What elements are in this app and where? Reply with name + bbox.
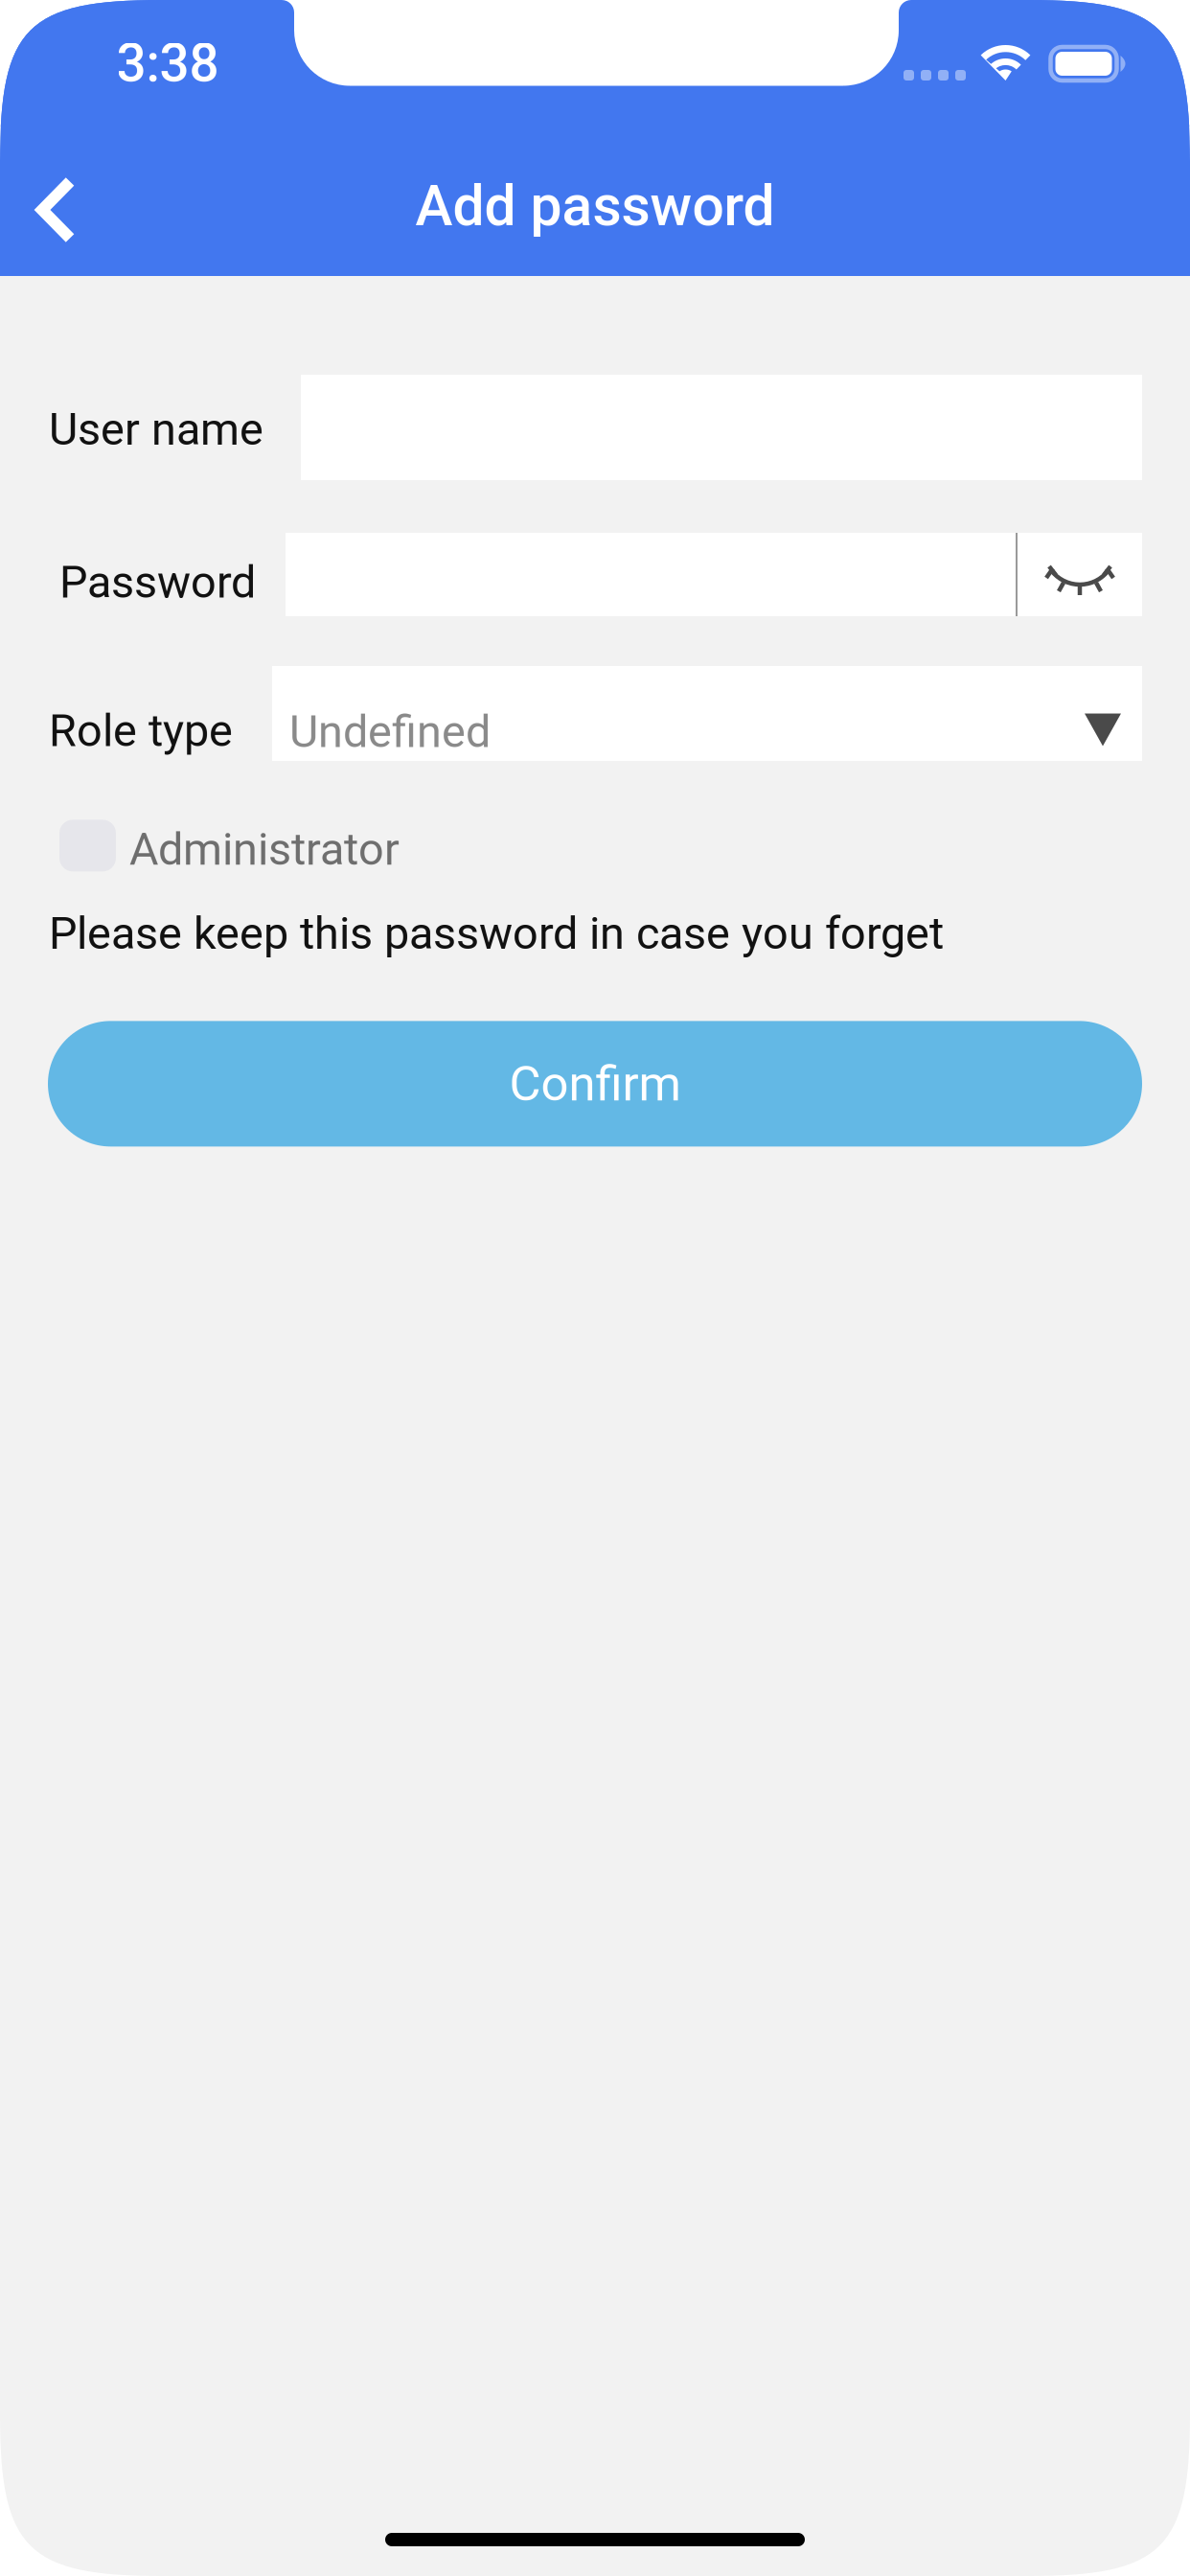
staticText: 3:38: [116, 33, 219, 94]
staticText: Add password: [415, 173, 775, 239]
button[interactable]: Undefined: [272, 666, 1142, 761]
staticText: User name: [49, 403, 263, 456]
staticText: Undefined: [289, 706, 491, 758]
staticText: Password: [59, 556, 256, 608]
staticText: Confirm: [509, 1055, 681, 1112]
staticText: Administrator: [129, 823, 400, 876]
staticText: Role type: [49, 705, 233, 757]
button[interactable]: Administrator: [0, 819, 400, 872]
button[interactable]: Back: [0, 134, 112, 268]
button[interactable]: Confirm: [48, 1021, 1142, 1147]
button[interactable]: Show password: [1018, 533, 1142, 616]
staticText: Please keep this password in case you fo…: [49, 907, 944, 960]
